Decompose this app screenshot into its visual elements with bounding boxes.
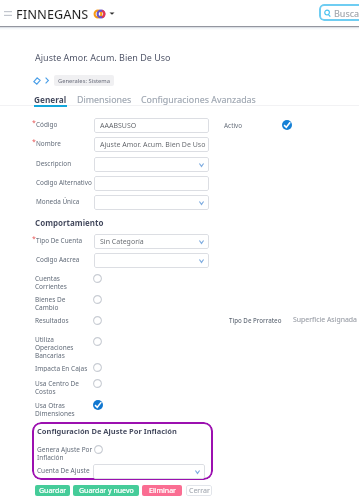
staticText: Usa Centro De Costos: [35, 379, 79, 395]
button[interactable]: Impacta En Cajas: [35, 364, 107, 372]
staticText: Cuentas Corrientes: [35, 274, 67, 290]
button[interactable]: Cerrar: [186, 485, 212, 496]
staticText: Superficie Asignada: [293, 315, 357, 324]
button[interactable]: Activo: [282, 120, 292, 130]
staticText: FINNEGANS: [16, 5, 89, 22]
button[interactable]: Menu: [1, 7, 14, 20]
button[interactable]: [94, 157, 209, 172]
button[interactable]: Cuentas Corrientes: [35, 274, 107, 290]
button[interactable]: Bienes De Cambio: [35, 295, 107, 311]
button[interactable]: Usa Centro De Costos: [35, 379, 107, 395]
staticText: General: [34, 94, 67, 105]
staticText: *: [32, 234, 36, 244]
button[interactable]: Genera Ajuste Por Inflación: [37, 445, 107, 461]
staticText: Código: [36, 120, 58, 129]
staticText: Ajuste Amor. Acum. Bien De Uso: [100, 140, 206, 150]
staticText: *: [32, 137, 36, 147]
button[interactable]: Generales: Sistema: [58, 77, 110, 84]
button[interactable]: Usa Otras Dimensiones: [35, 401, 107, 417]
staticText: Generales: Sistema: [58, 77, 110, 84]
staticText: Utiliza Operaciones Bancarias: [35, 335, 74, 360]
staticText: Configuración De Ajuste Por Inflación: [37, 426, 177, 436]
staticText: Eliminar: [149, 486, 176, 496]
button[interactable]: General: [34, 94, 67, 107]
staticText: *: [32, 118, 36, 128]
button[interactable]: Guardar: [35, 485, 70, 496]
staticText: Guardar y nuevo: [79, 486, 134, 496]
staticText: Moneda Única: [36, 197, 80, 206]
button[interactable]: [93, 464, 205, 479]
staticText: Nombre: [36, 139, 61, 148]
staticText: Codigo Aacrea: [36, 255, 80, 264]
staticText: Codigo Alternativo: [36, 178, 92, 187]
staticText: Ajuste Amor. Acum. Bien De Uso: [35, 51, 171, 63]
button[interactable]: Buscar: [319, 4, 359, 21]
button[interactable]: Resultados: [35, 316, 107, 324]
button[interactable]: [94, 195, 209, 210]
staticText: Dimensiones: [77, 93, 132, 105]
button[interactable]: Utiliza Operaciones Bancarias: [35, 335, 107, 360]
button[interactable]: Ajuste Amor. Acum. Bien De Uso: [94, 137, 209, 152]
staticText: Usa Otras Dimensiones: [35, 401, 75, 417]
button[interactable]: Configuraciones Avanzadas: [141, 93, 256, 107]
staticText: Configuraciones Avanzadas: [141, 93, 256, 105]
button[interactable]: Tag: [33, 77, 41, 85]
staticText: Descripcion: [36, 159, 72, 168]
staticText: Tipo De Cuenta: [36, 236, 83, 245]
staticText: Buscar: [334, 7, 359, 19]
staticText: Cerrar: [189, 486, 210, 496]
button[interactable]: [94, 176, 209, 191]
staticText: Comportamiento: [35, 217, 104, 228]
staticText: Genera Ajuste Por Inflación: [37, 445, 93, 461]
staticText: AAABSUSO: [100, 121, 137, 131]
staticText: Tipo De Prorrateo: [229, 316, 282, 324]
staticText: Guardar: [39, 486, 67, 496]
button[interactable]: Guardar y nuevo: [73, 485, 139, 496]
staticText: Cuenta De Ajuste: [37, 466, 90, 475]
staticText: Activo: [224, 121, 243, 130]
button[interactable]: AAABSUSO: [94, 118, 209, 133]
button[interactable]: Sin Categoría: [94, 234, 209, 249]
button[interactable]: Eliminar: [142, 485, 182, 496]
staticText: Resultados: [35, 316, 69, 324]
staticText: Bienes De Cambio: [35, 295, 66, 311]
button[interactable]: [94, 253, 209, 268]
staticText: Sin Categoría: [100, 237, 144, 247]
staticText: Impacta En Cajas: [35, 364, 88, 372]
button[interactable]: Dimensiones: [77, 93, 132, 107]
